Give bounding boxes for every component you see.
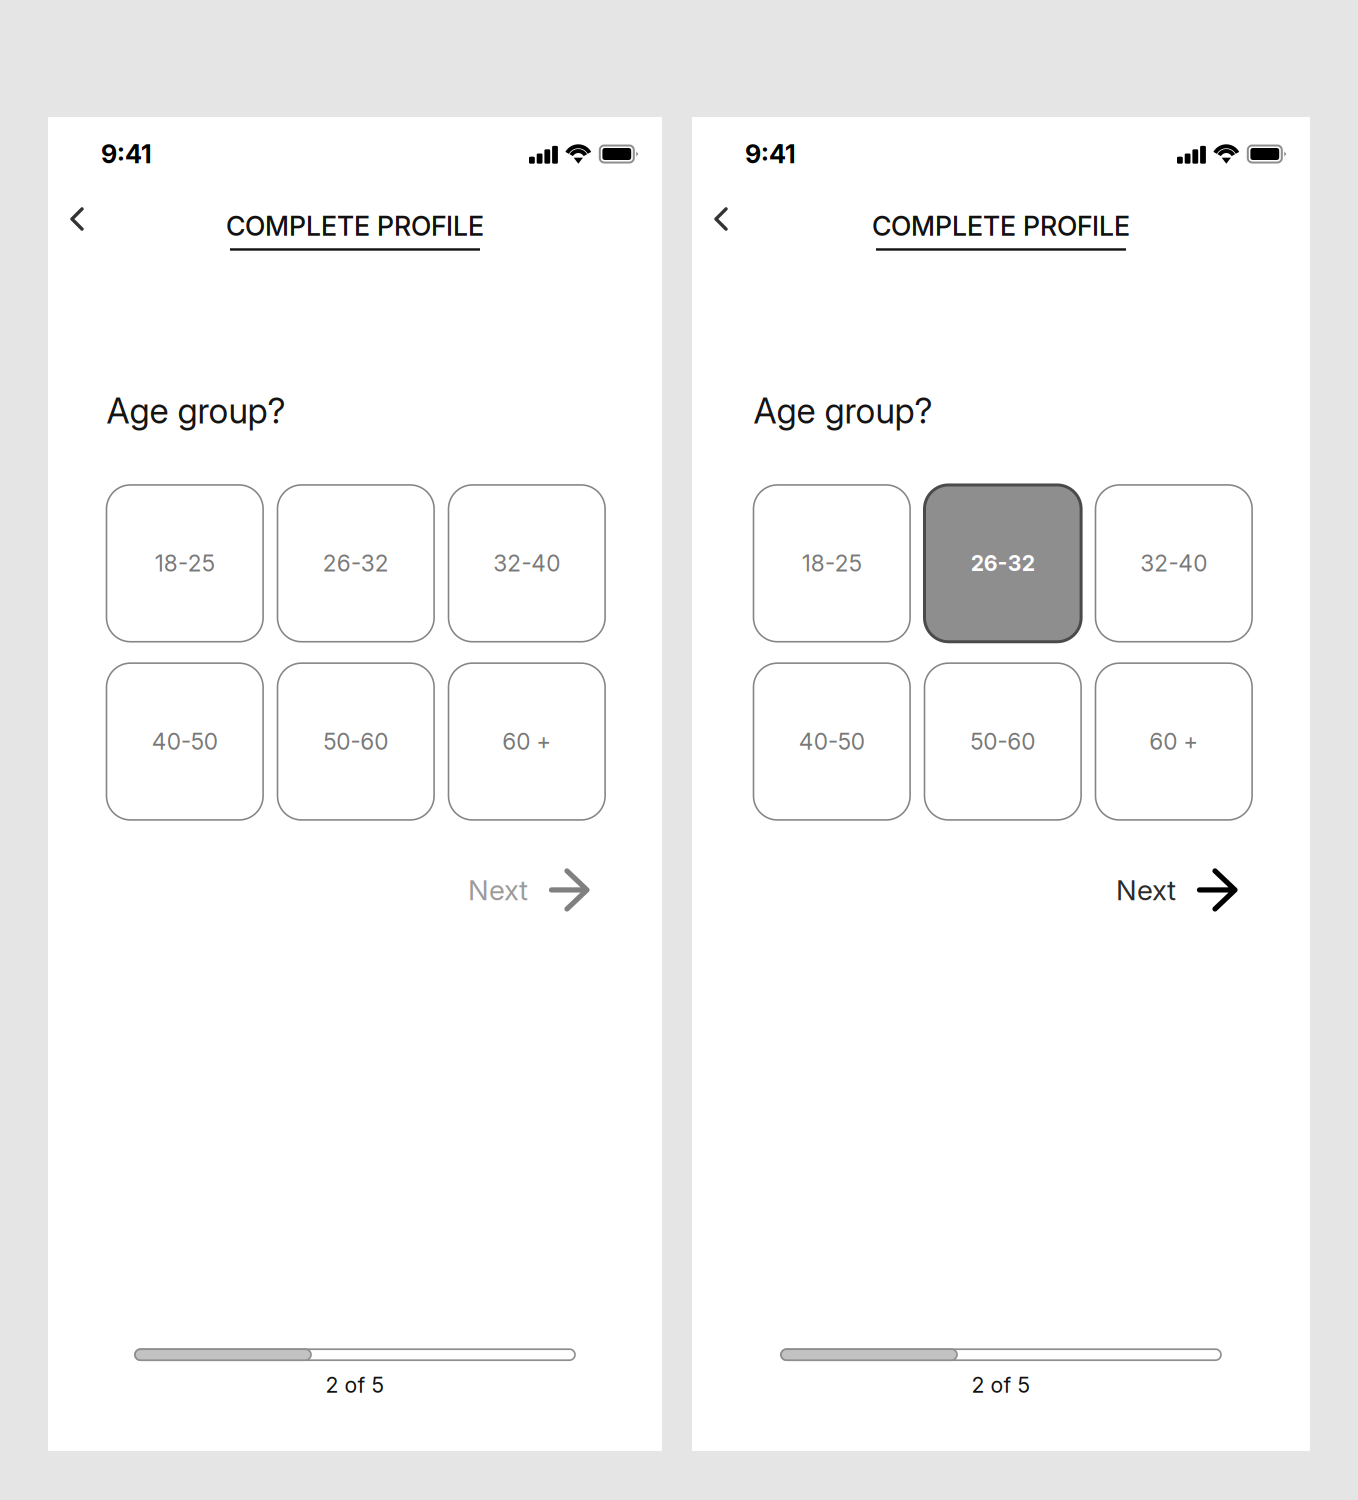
button[interactable]: 18-25 bbox=[753, 485, 910, 642]
staticText: 26-32 bbox=[971, 550, 1035, 576]
staticText: Age group? bbox=[106, 390, 285, 432]
button[interactable]: 18-25 bbox=[106, 485, 263, 642]
button[interactable]: 50-60 bbox=[924, 663, 1081, 820]
button[interactable]: 40-50 bbox=[106, 663, 263, 820]
staticText: 18-25 bbox=[802, 550, 862, 577]
button[interactable]: Next bbox=[1116, 862, 1310, 918]
staticText: 2 of 5 bbox=[325, 1372, 384, 1398]
button[interactable]: 32-40 bbox=[1095, 485, 1252, 642]
staticText: COMPLETE PROFILE bbox=[872, 210, 1130, 242]
staticText: 9:41 bbox=[101, 139, 152, 169]
staticText: Next bbox=[468, 873, 528, 907]
staticText: 32-40 bbox=[493, 550, 560, 577]
staticText: 26-32 bbox=[323, 550, 389, 577]
button[interactable]: 26-32 bbox=[924, 485, 1081, 642]
staticText: COMPLETE PROFILE bbox=[226, 210, 484, 242]
staticText: 32-40 bbox=[1140, 550, 1207, 577]
button[interactable]: 40-50 bbox=[753, 663, 910, 820]
staticText: 40-50 bbox=[152, 728, 218, 755]
staticText: Next bbox=[1116, 873, 1176, 907]
staticText: 50-60 bbox=[323, 728, 388, 755]
staticText: 60 + bbox=[1149, 728, 1198, 755]
staticText: 9:41 bbox=[745, 139, 796, 169]
button[interactable]: Back bbox=[698, 196, 744, 242]
staticText: 60 + bbox=[502, 728, 551, 755]
button[interactable]: 60 + bbox=[1095, 663, 1252, 820]
staticText: Age group? bbox=[753, 390, 932, 432]
button[interactable]: Back bbox=[54, 196, 100, 242]
button[interactable]: 26-32 bbox=[277, 485, 434, 642]
staticText: 18-25 bbox=[155, 550, 215, 577]
staticText: 50-60 bbox=[970, 728, 1035, 755]
button[interactable]: 32-40 bbox=[448, 485, 605, 642]
button[interactable]: 50-60 bbox=[277, 663, 434, 820]
staticText: 40-50 bbox=[799, 728, 865, 755]
staticText: 2 of 5 bbox=[971, 1372, 1030, 1398]
button[interactable]: 60 + bbox=[448, 663, 605, 820]
button[interactable]: Next bbox=[468, 862, 662, 918]
